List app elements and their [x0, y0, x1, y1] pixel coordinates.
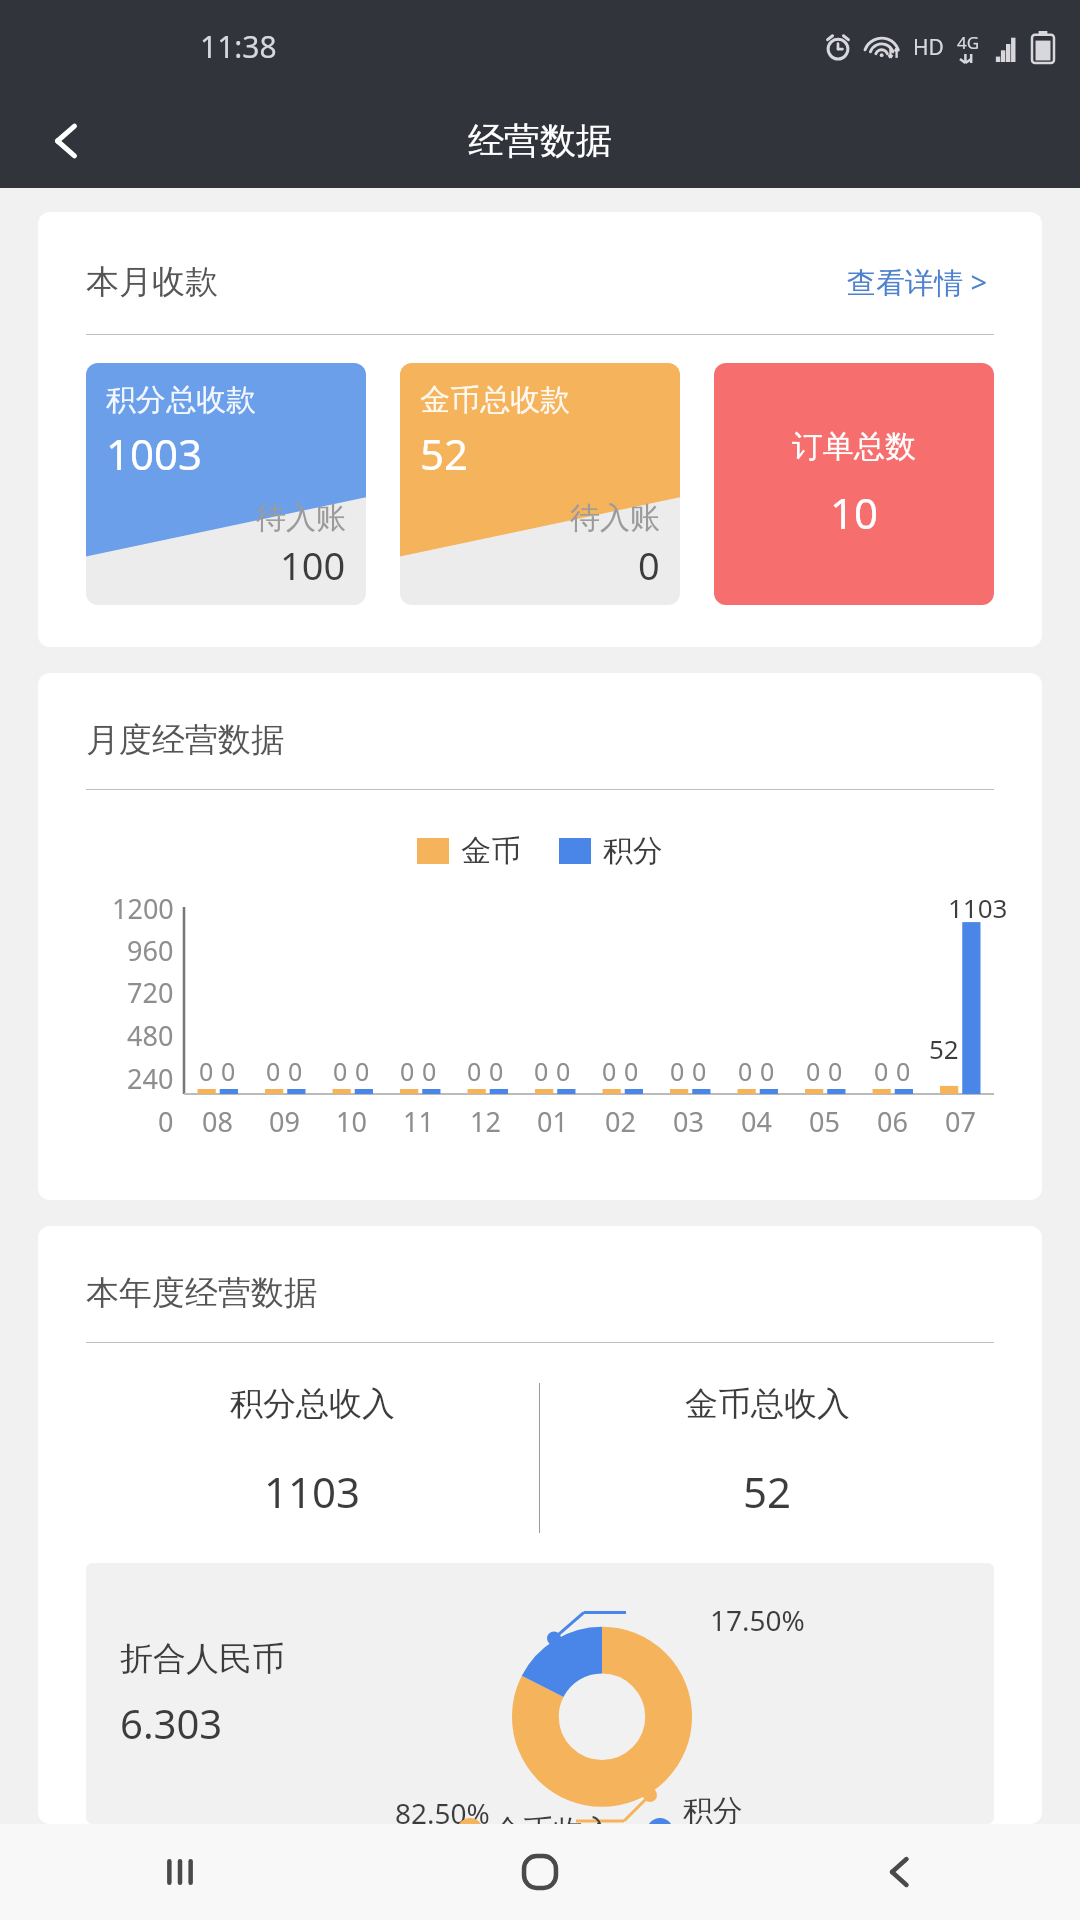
staticText: 金币总收入: [685, 1383, 850, 1425]
button[interactable]: 金币总收款: [400, 363, 680, 605]
staticText: 金币: [461, 832, 521, 870]
staticText: 0: [602, 1054, 617, 1088]
staticText: 03: [673, 1103, 704, 1140]
staticText: 04: [741, 1103, 772, 1140]
staticText: 查看详情 >: [847, 262, 988, 302]
staticText: 720: [127, 974, 174, 1011]
staticText: 折合人民币: [120, 1638, 285, 1680]
staticText: 0: [828, 1054, 843, 1088]
staticText: 月度经营数据: [86, 719, 284, 761]
staticText: 05: [809, 1103, 840, 1140]
staticText: 0: [199, 1054, 214, 1088]
staticText: 积分收入: [683, 1792, 747, 1824]
staticText: 待入账: [256, 499, 346, 537]
staticText: 0: [467, 1054, 482, 1088]
staticText: 0: [221, 1054, 236, 1088]
staticText: 积分总收款: [106, 381, 256, 419]
staticText: 0: [670, 1054, 685, 1088]
staticText: 0: [158, 1103, 174, 1140]
staticText: 10: [336, 1103, 367, 1140]
staticText: 02: [605, 1103, 636, 1140]
staticText: 12: [470, 1103, 501, 1140]
button[interactable]: Home: [360, 1824, 720, 1920]
staticText: HD: [913, 33, 944, 62]
staticText: 0: [624, 1054, 639, 1088]
staticText: 100: [280, 539, 346, 591]
button[interactable]: 积分总收款: [86, 363, 366, 605]
button[interactable]: Back: [720, 1824, 1080, 1920]
button[interactable]: Recents: [0, 1824, 360, 1920]
staticText: 17.50%: [710, 1601, 805, 1639]
staticText: 金币总收款: [420, 381, 570, 419]
staticText: 10: [830, 484, 879, 541]
staticText: 本月收款: [86, 261, 218, 303]
staticText: 08: [202, 1103, 233, 1140]
staticText: 本年度经营数据: [86, 1272, 317, 1314]
staticText: 1103: [948, 890, 1008, 925]
staticText: 0: [692, 1054, 707, 1088]
staticText: 0: [333, 1054, 348, 1088]
staticText: 07: [945, 1103, 976, 1140]
staticText: 09: [269, 1103, 300, 1140]
staticText: 960: [127, 932, 174, 969]
staticText: 订单总数: [792, 427, 916, 466]
staticText: 0: [400, 1054, 415, 1088]
staticText: 82.50%: [395, 1794, 490, 1824]
staticText: 金币收入: [493, 1812, 613, 1824]
staticText: 经营数据: [468, 118, 612, 163]
staticText: 0: [422, 1054, 437, 1088]
staticText: 06: [877, 1103, 908, 1140]
button[interactable]: Back: [36, 110, 98, 172]
staticText: 0: [355, 1054, 370, 1088]
staticText: 0: [534, 1054, 549, 1088]
staticText: 6.303: [120, 1696, 223, 1750]
staticText: 0: [556, 1054, 571, 1088]
button[interactable]: 查看详情 >: [841, 256, 994, 308]
staticText: 1103: [264, 1463, 361, 1520]
staticText: 0: [638, 539, 660, 591]
staticText: 1200: [112, 890, 174, 927]
staticText: 0: [489, 1054, 504, 1088]
staticText: 积分总收入: [230, 1383, 395, 1425]
staticText: 0: [266, 1054, 281, 1088]
staticText: 240: [127, 1060, 174, 1097]
staticText: 4G: [957, 31, 980, 54]
staticText: 积分: [603, 832, 663, 870]
staticText: 52: [929, 1031, 959, 1066]
staticText: 52: [420, 425, 469, 482]
staticText: 0: [896, 1054, 911, 1088]
staticText: 52: [743, 1463, 792, 1520]
staticText: 待入账: [570, 499, 660, 537]
staticText: 1003: [106, 425, 203, 482]
button[interactable]: 订单总数: [714, 363, 994, 605]
staticText: 0: [288, 1054, 303, 1088]
staticText: 0: [760, 1054, 775, 1088]
staticText: 0: [874, 1054, 889, 1088]
staticText: 0: [738, 1054, 753, 1088]
staticText: 11:38: [200, 26, 277, 67]
staticText: 11: [403, 1103, 434, 1140]
staticText: 480: [127, 1017, 174, 1054]
staticText: 0: [806, 1054, 821, 1088]
staticText: 01: [537, 1103, 568, 1140]
